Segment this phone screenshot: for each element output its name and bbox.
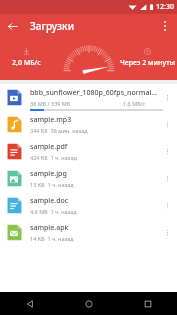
- button[interactable]: Ещё: [160, 111, 174, 138]
- button[interactable]: bbb_sunflower_1080p_60fps_normal.mp4: [0, 84, 177, 111]
- staticText: sample.doc: [30, 196, 69, 206]
- staticText: 12:30: [156, 2, 174, 12]
- staticText: 13 КБ 1 ч. назад: [30, 181, 74, 188]
- button[interactable]: Недавние приложения: [118, 292, 177, 315]
- button[interactable]: sample.pdf: [0, 138, 177, 165]
- button[interactable]: Ещё: [160, 138, 174, 165]
- button[interactable]: Ещё: [160, 165, 174, 192]
- button[interactable]: Назад: [0, 292, 59, 315]
- button[interactable]: sample.mp3: [0, 111, 177, 138]
- staticText: Загрузки: [30, 19, 75, 33]
- button[interactable]: Главный экран: [59, 292, 118, 315]
- button[interactable]: sample.apk: [0, 219, 177, 246]
- staticText: 14 КБ 1 ч. назад: [30, 235, 74, 242]
- staticText: Через 2 минуты: [120, 58, 175, 68]
- button[interactable]: sample.doc: [0, 192, 177, 219]
- button[interactable]: Назад: [0, 14, 24, 38]
- staticText: bbb_sunflower_1080p_60fps_normal.mp4: [30, 88, 157, 98]
- button[interactable]: Ещё: [160, 219, 174, 246]
- staticText: 4,9 МБ 1 ч. назад: [30, 208, 77, 215]
- staticText: sample.pdf: [30, 142, 68, 152]
- staticText: sample.mp3: [30, 115, 72, 125]
- staticText: 344 КБ 38 мин. назад: [30, 127, 88, 134]
- staticText: 2,0 МБ/с: [12, 58, 41, 68]
- button[interactable]: Ещё: [160, 192, 174, 219]
- staticText: 36 МБ / 339 МБ: [30, 100, 71, 107]
- button[interactable]: Ещё: [153, 14, 177, 38]
- button[interactable]: Ещё: [160, 84, 174, 111]
- staticText: 1,6 МБ/с: [123, 100, 146, 107]
- staticText: sample.apk: [30, 223, 69, 233]
- staticText: 424 КБ 1 ч. назад: [30, 154, 77, 161]
- staticText: sample.jpg: [30, 169, 67, 179]
- button[interactable]: sample.jpg: [0, 165, 177, 192]
